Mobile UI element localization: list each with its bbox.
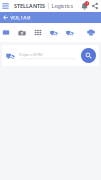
staticText: Digite o MVM — [19, 52, 43, 57]
button[interactable]: In transit — [62, 24, 78, 41]
staticText: VOLTAR — [10, 14, 30, 21]
button[interactable]: VOLTAR — [0, 12, 101, 23]
staticText: Logistics — [52, 2, 74, 10]
button[interactable]: Print — [83, 24, 99, 41]
staticText: STELLANTIS — [14, 2, 45, 10]
button[interactable]: Grid view — [30, 24, 46, 41]
staticText: 54 — [85, 2, 89, 5]
button[interactable]: Menu — [0, 0, 11, 12]
button[interactable]: Search — [81, 48, 96, 63]
button[interactable]: Share — [90, 0, 100, 12]
button[interactable]: Shipments — [46, 24, 62, 41]
button[interactable]: List view — [0, 24, 14, 41]
button[interactable]: Camera — [14, 24, 30, 41]
button[interactable]: Notifications — [79, 0, 90, 12]
